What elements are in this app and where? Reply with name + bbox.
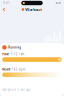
button[interactable]: Heart rate progress bbox=[2, 72, 62, 77]
staticText: 5:12 / km bbox=[11, 52, 24, 56]
staticText: 142 bpm bbox=[12, 68, 25, 71]
staticText: 9:41 bbox=[3, 1, 10, 5]
staticText: Heart bbox=[2, 68, 10, 71]
staticText: Last synced 2 min ago bbox=[2, 88, 31, 91]
button[interactable]: Pace progress bbox=[2, 57, 62, 62]
staticText: Pace bbox=[2, 52, 9, 56]
button[interactable]: Back bbox=[1, 6, 7, 13]
staticText: Workout bbox=[25, 7, 42, 12]
staticText: Running bbox=[8, 46, 21, 49]
